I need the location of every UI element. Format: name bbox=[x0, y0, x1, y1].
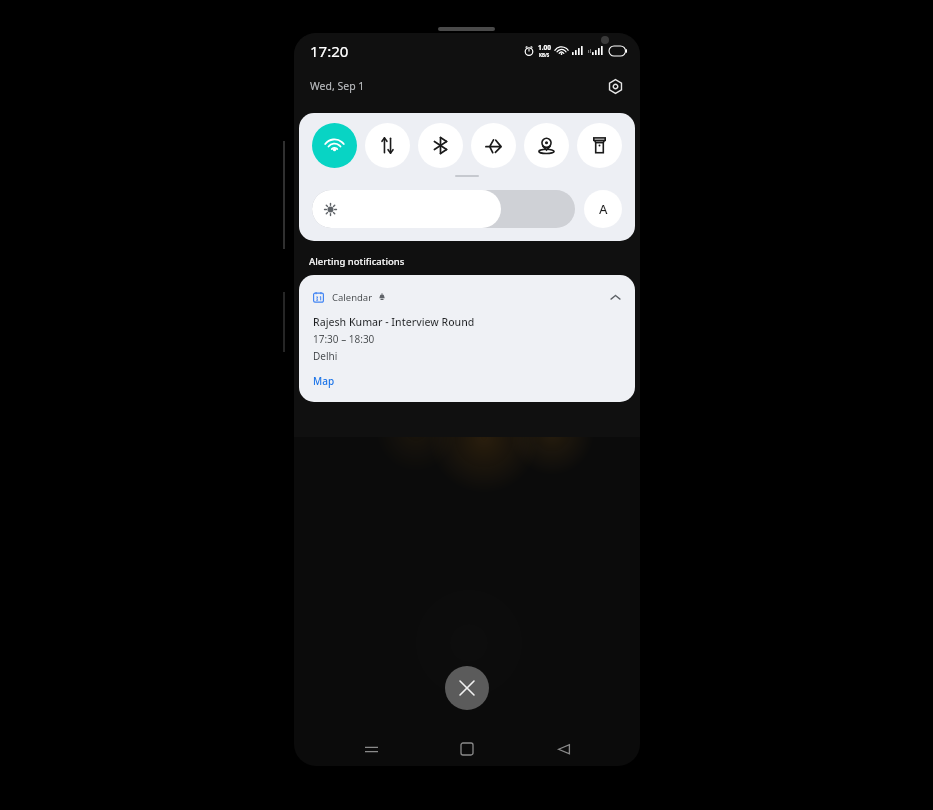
button[interactable]: Collapse bbox=[605, 287, 625, 307]
staticText: Wed, Sep 1 bbox=[310, 79, 365, 93]
button[interactable]: Home bbox=[447, 732, 487, 766]
staticText: KB/S bbox=[539, 52, 550, 58]
staticText: Map bbox=[313, 374, 335, 388]
staticText: 17:20 bbox=[310, 41, 349, 61]
button[interactable]: Clear all notifications bbox=[445, 666, 489, 710]
button[interactable]: Wi-Fi bbox=[312, 123, 357, 168]
staticText: Rajesh Kumar - Interview Round bbox=[313, 315, 475, 329]
staticText: ıl bbox=[588, 47, 592, 55]
button[interactable]: Calendar bbox=[299, 275, 635, 402]
button[interactable]: Settings bbox=[602, 73, 628, 99]
button[interactable]: Map bbox=[313, 374, 335, 388]
button[interactable]: Location bbox=[524, 123, 569, 168]
button[interactable]: Recent apps bbox=[351, 732, 391, 766]
staticText: Delhi bbox=[313, 349, 338, 363]
button[interactable]: Airplane mode bbox=[471, 123, 516, 168]
staticText: A bbox=[599, 200, 608, 218]
button[interactable]: Auto brightness bbox=[584, 190, 622, 228]
button[interactable] bbox=[312, 190, 575, 228]
staticText: 17:30 – 18:30 bbox=[313, 332, 375, 346]
staticText: Alerting notifications bbox=[309, 255, 405, 268]
button[interactable]: Flashlight bbox=[577, 123, 622, 168]
button[interactable]: Back bbox=[544, 732, 584, 766]
button[interactable]: Bluetooth bbox=[418, 123, 463, 168]
staticText: Calendar bbox=[332, 291, 373, 304]
staticText: 1.00 bbox=[538, 43, 551, 52]
button[interactable]: Mobile data bbox=[365, 123, 410, 168]
